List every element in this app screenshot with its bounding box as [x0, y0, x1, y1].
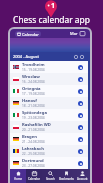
staticText: Search — [46, 177, 55, 181]
staticText: 23 - 27.08.2004 — [22, 164, 45, 168]
staticText: Dortmund — [22, 158, 44, 164]
staticText: Mar — [70, 31, 78, 36]
staticText: 1 — [51, 1, 56, 11]
button[interactable]: Pick month — [80, 31, 85, 36]
button[interactable]: Next month — [80, 55, 84, 59]
button[interactable]: Account — [74, 169, 90, 183]
staticText: Lahrabach — [22, 146, 44, 152]
button[interactable]: Rashafilin WD — [10, 121, 90, 133]
staticText: Account — [77, 177, 88, 181]
staticText: Spitiondega — [22, 110, 47, 116]
button[interactable]: Wroclaw — [10, 73, 90, 85]
button[interactable]: Spitiondega — [10, 109, 90, 121]
button[interactable]: Trondheim — [10, 61, 90, 73]
staticText: Calendar — [22, 32, 39, 37]
button[interactable]: Ortegnia — [10, 85, 90, 97]
button[interactable]: Search — [42, 169, 58, 183]
button[interactable]: Home — [10, 169, 26, 183]
button[interactable]: Calendar — [26, 169, 42, 183]
button[interactable]: Bragen — [10, 133, 90, 145]
button[interactable]: Info — [78, 101, 83, 106]
staticText: Wroclaw — [22, 74, 40, 80]
staticText: Bragen — [22, 134, 37, 140]
staticText: Chess calendar app — [0, 14, 103, 25]
staticText: Calendar — [28, 177, 40, 181]
staticText: Ortegnia — [22, 86, 41, 92]
staticText: 19 - 23.08.2004 — [22, 116, 45, 120]
staticText: 17 - 19.08.2004 — [22, 92, 45, 96]
button[interactable]: Info — [78, 77, 83, 82]
button[interactable]: Info — [78, 89, 83, 94]
button[interactable]: Lahrabach — [10, 145, 90, 157]
staticText: Trondheim — [22, 62, 45, 68]
button[interactable]: Info — [78, 65, 83, 70]
button[interactable]: Info — [78, 113, 83, 118]
staticText: 16 - 24.08.2004 — [22, 80, 45, 84]
button[interactable]: Info — [78, 137, 83, 142]
button[interactable]: Dortmund — [10, 157, 90, 169]
staticText: Bookmarks — [59, 177, 74, 181]
staticText: 18 - 21.08.2004 — [22, 104, 45, 108]
button[interactable]: Hanosf — [10, 97, 90, 109]
staticText: 20 - 21.08.2004 — [22, 128, 45, 132]
button[interactable]: Calendar — [15, 31, 41, 37]
staticText: 15 - 19.08.2004 — [22, 68, 45, 72]
button[interactable]: Info — [78, 149, 83, 154]
staticText: Rashafilin WD — [22, 122, 51, 128]
button[interactable]: Bookmarks — [58, 169, 74, 183]
button[interactable]: Info — [78, 125, 83, 130]
staticText: 22 - 25.08.2004 — [22, 152, 45, 156]
button[interactable]: Previous month — [74, 55, 78, 59]
staticText: 2004 - August — [13, 54, 39, 59]
staticText: Home — [14, 177, 22, 181]
button[interactable]: Info — [78, 161, 83, 166]
staticText: 21 - 24.08.2004 — [22, 140, 45, 144]
staticText: Hanosf — [22, 98, 37, 104]
